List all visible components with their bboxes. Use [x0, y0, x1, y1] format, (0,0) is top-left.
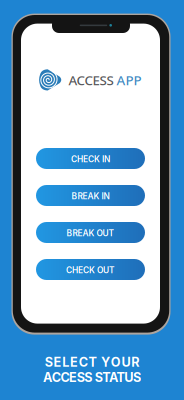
staticText: ACCESS	[68, 71, 113, 89]
staticText: APP	[116, 71, 141, 89]
staticText: CHECK IN	[71, 154, 110, 164]
button[interactable]: CHECK OUT	[36, 259, 145, 280]
staticText: ACCESS STATUS	[43, 370, 141, 385]
button[interactable]: CHECK IN	[36, 148, 145, 169]
staticText: BREAK IN	[71, 191, 109, 201]
staticText: SELECT YOUR	[45, 354, 139, 370]
button[interactable]: BREAK IN	[36, 185, 145, 206]
staticText: BREAK OUT	[66, 228, 114, 238]
staticText: CHECK OUT	[66, 265, 115, 275]
button[interactable]: BREAK OUT	[36, 222, 145, 243]
